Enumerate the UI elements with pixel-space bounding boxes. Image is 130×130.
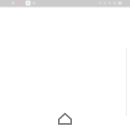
button[interactable]: Tab bbox=[25, 0, 31, 6]
button[interactable]: New Tab bbox=[32, 0, 36, 6]
button[interactable]: Home bbox=[58, 113, 72, 125]
button[interactable]: Sidebar bbox=[11, 0, 15, 6]
button[interactable]: Site bbox=[17, 0, 23, 6]
